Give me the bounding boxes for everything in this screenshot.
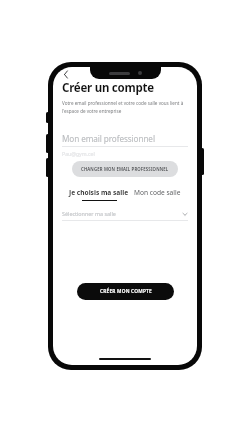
staticText: Je choisis ma salle bbox=[69, 188, 129, 197]
staticText: Sélectionner ma salle bbox=[62, 210, 182, 217]
button[interactable]: Sélectionner ma salle bbox=[62, 210, 188, 217]
button[interactable]: CHANGER MON EMAIL PROFESSIONNEL bbox=[72, 161, 178, 177]
button[interactable]: CRÉER MON COMPTE bbox=[77, 283, 174, 300]
staticText: Votre email professionnel et votre code … bbox=[62, 100, 184, 106]
staticText: CRÉER MON COMPTE bbox=[100, 288, 152, 295]
staticText: Mon code salle bbox=[134, 188, 181, 197]
button[interactable]: Mon code salle bbox=[134, 188, 181, 197]
button[interactable]: Retour bbox=[62, 69, 73, 80]
staticText: Créer un compte bbox=[62, 80, 154, 96]
staticText: Mon email professionnel bbox=[62, 133, 155, 144]
staticText: Pau@gym.cel bbox=[62, 150, 95, 157]
button[interactable]: Je choisis ma salle bbox=[69, 188, 129, 201]
staticText: CHANGER MON EMAIL PROFESSIONNEL bbox=[81, 166, 169, 172]
staticText: l'espace de votre entreprise bbox=[62, 108, 122, 114]
